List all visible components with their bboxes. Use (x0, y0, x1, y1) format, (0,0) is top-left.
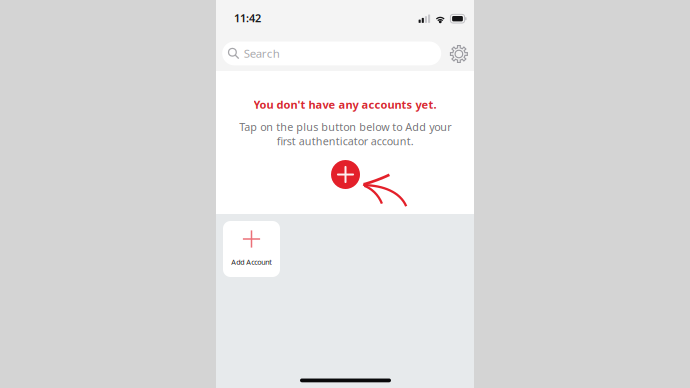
button[interactable]: Search (222, 41, 441, 65)
staticText: Tap on the plus button below to Add your… (239, 120, 451, 148)
button[interactable]: Add Account (223, 221, 280, 277)
staticText: Search (244, 46, 280, 61)
button[interactable]: Add account (331, 160, 360, 189)
staticText: Add Account (231, 257, 272, 267)
button[interactable]: Settings (447, 42, 471, 66)
staticText: You don't have any accounts yet. (253, 97, 436, 112)
staticText: 11:42 (234, 11, 261, 25)
